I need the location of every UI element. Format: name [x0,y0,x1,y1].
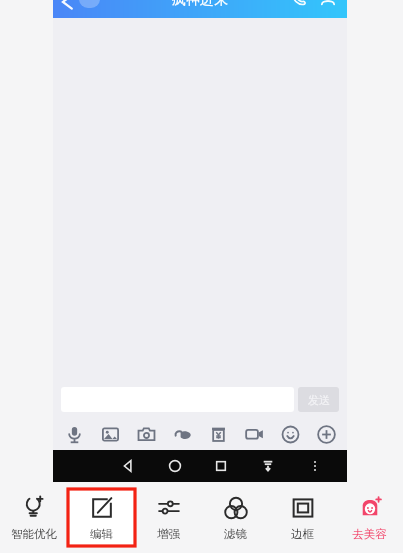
button[interactable]: 滤镜 [202,489,269,546]
button[interactable]: 发送 [298,387,339,412]
staticText: 发送 [308,393,330,407]
button[interactable]: Contact info [317,0,339,8]
staticText: 边框 [291,527,314,541]
staticText: 智能优化 [11,527,57,541]
button[interactable]: Voice message [61,421,87,447]
button[interactable]: Call [289,0,311,8]
staticText: 增强 [157,527,180,541]
button[interactable]: 编辑 [68,489,135,546]
button[interactable]: Camera [133,421,159,447]
button[interactable]: Back [114,452,142,480]
staticText: 编辑 [90,527,113,541]
button[interactable]: GIF [241,421,267,447]
button[interactable]: 边框 [269,489,336,546]
button[interactable]: 智能优化 [0,489,68,546]
button[interactable]: Emoji [277,421,303,447]
button[interactable]: Menu [301,452,329,480]
button[interactable]: More [313,421,339,447]
staticText: 滤镜 [224,527,247,541]
button[interactable]: Hide keyboard [254,452,282,480]
button[interactable]: Nudge [169,421,195,447]
staticText: 疯神进来 [172,0,228,9]
button[interactable]: Photo [97,421,123,447]
button[interactable]: Home [161,452,189,480]
button[interactable]: Red packet [205,421,231,447]
button[interactable]: Back [55,0,79,10]
button[interactable]: Recents [207,452,235,480]
button[interactable]: 去美容 [336,489,403,546]
button[interactable]: Avatar [79,0,100,8]
button[interactable]: 增强 [135,489,202,546]
staticText: 去美容 [352,527,387,541]
